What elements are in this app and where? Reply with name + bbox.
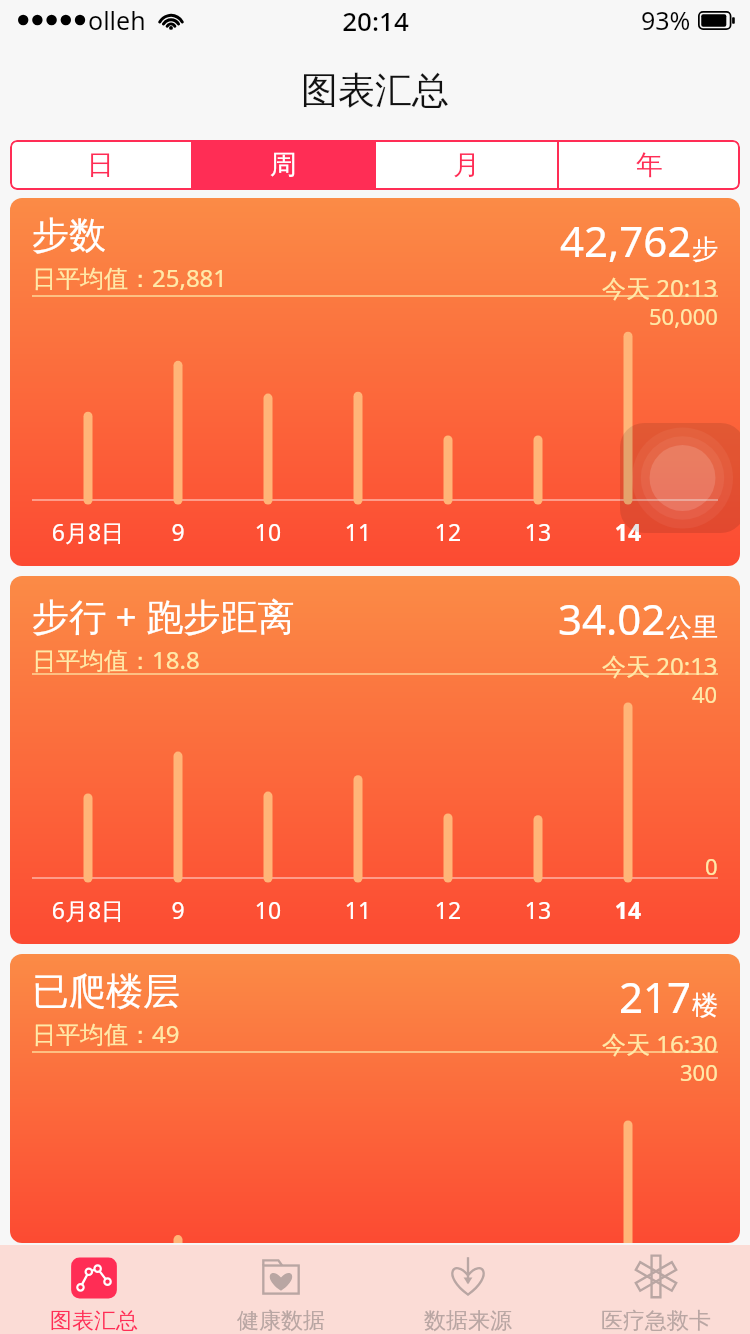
staticText: 11 [313, 516, 403, 547]
staticText: 日 [87, 148, 114, 182]
staticText: 6月8日 [43, 516, 133, 547]
staticText: 步行 + 跑步距离 [32, 590, 295, 641]
staticText: 50,000 [649, 301, 718, 331]
staticText: 图表汇总 [301, 67, 449, 114]
button[interactable]: 数据来源 [374, 1245, 562, 1334]
staticText: 今天 20:13 [602, 271, 718, 304]
staticText: 40 [692, 679, 718, 709]
staticText: 13 [493, 894, 583, 925]
staticText: 93% [641, 3, 691, 37]
staticText: 已爬楼层 [32, 968, 180, 1015]
staticText: 12 [403, 894, 493, 925]
staticText: 13 [493, 516, 583, 547]
staticText: 9 [133, 894, 223, 925]
staticText: 公里 [666, 611, 718, 644]
staticText: 步 [692, 233, 718, 266]
button[interactable]: 日 [10, 140, 191, 190]
staticText: 月 [453, 148, 480, 182]
button[interactable]: 步行 + 跑步距离 [10, 576, 740, 944]
staticText: 10 [223, 894, 313, 925]
staticText: 楼 [692, 989, 718, 1022]
button[interactable]: 步数 [10, 198, 740, 566]
staticText: 图表汇总 [50, 1307, 138, 1334]
staticText: 今天 16:30 [602, 1027, 718, 1060]
staticText: 今天 20:13 [602, 649, 718, 682]
button[interactable]: 图表汇总 [0, 1245, 187, 1334]
button[interactable]: 周 [193, 140, 374, 190]
button[interactable]: 已爬楼层 [10, 954, 740, 1243]
button[interactable]: 年 [559, 140, 740, 190]
staticText: 日平均值：25,881 [32, 261, 228, 294]
button[interactable]: 月 [376, 140, 557, 190]
staticText: 日平均值：49 [32, 1017, 180, 1050]
staticText: 9 [133, 516, 223, 547]
staticText: 42,762 [560, 212, 692, 269]
staticText: 300 [680, 1057, 718, 1087]
staticText: 6月8日 [43, 894, 133, 925]
button[interactable]: 医疗急救卡 [562, 1245, 750, 1334]
staticText: 217 [619, 968, 692, 1025]
staticText: 健康数据 [237, 1307, 325, 1334]
staticText: 11 [313, 894, 403, 925]
staticText: 20:14 [342, 3, 409, 38]
staticText: 14 [583, 516, 673, 547]
staticText: olleh [88, 3, 146, 37]
button[interactable]: 健康数据 [187, 1245, 374, 1334]
staticText: 10 [223, 516, 313, 547]
staticText: 周 [270, 148, 297, 182]
staticText: 0 [705, 851, 718, 881]
staticText: 医疗急救卡 [601, 1307, 711, 1334]
staticText: 日平均值：18.8 [32, 643, 200, 676]
staticText: 年 [636, 148, 663, 182]
staticText: 数据来源 [424, 1307, 512, 1334]
staticText: 12 [403, 516, 493, 547]
staticText: 34.02 [558, 590, 666, 647]
staticText: 步数 [32, 212, 106, 259]
staticText: 14 [583, 894, 673, 925]
